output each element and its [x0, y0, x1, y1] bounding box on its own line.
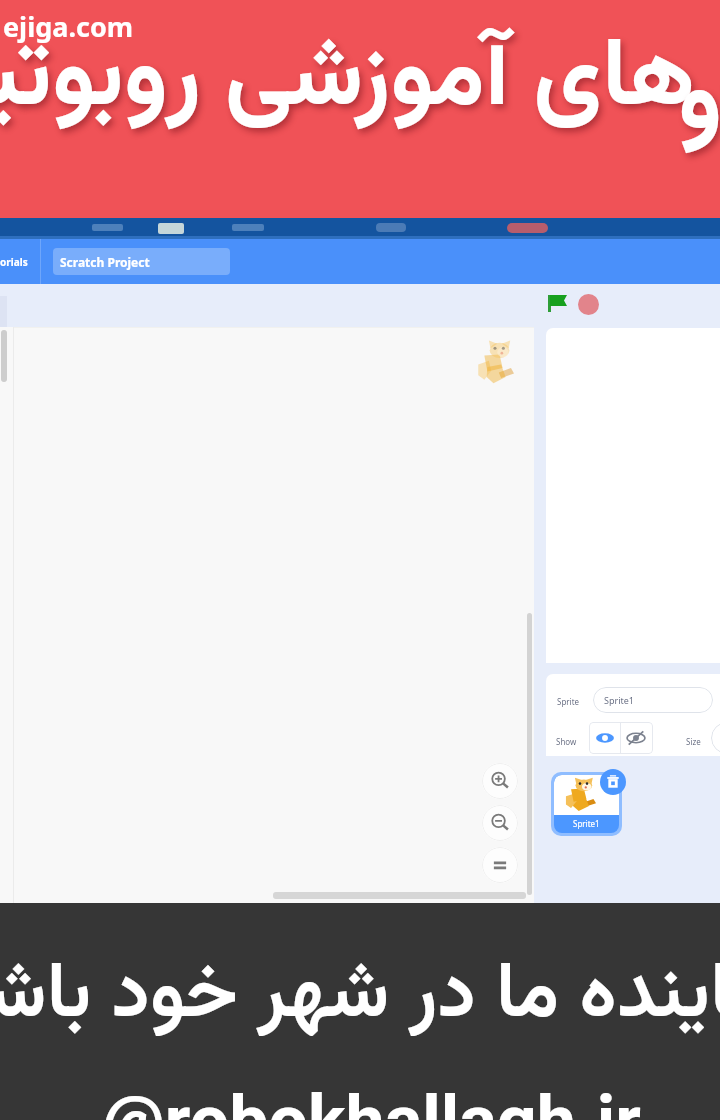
button[interactable]: Sprite size	[711, 722, 720, 754]
staticText: نماینده ما در شهر خود باشید	[0, 936, 720, 1036]
button[interactable]: orials	[0, 255, 32, 269]
staticText: orials	[0, 255, 28, 269]
button[interactable]: Zoom out	[482, 805, 518, 841]
staticText: Show	[556, 736, 577, 747]
button[interactable]: Delete sprite	[600, 769, 626, 795]
staticText: Sprite	[557, 696, 580, 707]
button[interactable]: Zoom in	[482, 763, 518, 799]
button[interactable]: Sprite1	[593, 687, 713, 713]
staticText: @robokhallagh.ir	[102, 1073, 641, 1120]
button[interactable]: Sprite1	[551, 772, 622, 836]
button[interactable]: Go	[544, 290, 574, 320]
staticText: Size	[686, 736, 701, 747]
staticText: Sprite1	[573, 818, 600, 829]
staticText: Scratch Project	[60, 254, 150, 270]
button[interactable]: Reset zoom	[482, 847, 518, 883]
staticText: ویدیو های آموزشی روبوتیک	[0, 7, 720, 155]
button[interactable]: Stop	[578, 294, 599, 315]
button[interactable]: Scratch Project	[53, 248, 230, 275]
staticText: و	[678, 31, 720, 179]
button[interactable]: Show sprite	[591, 724, 619, 752]
staticText: ejiga.com	[3, 8, 134, 45]
staticText: Sprite1	[604, 694, 634, 706]
button[interactable]: Hide sprite	[622, 724, 650, 752]
